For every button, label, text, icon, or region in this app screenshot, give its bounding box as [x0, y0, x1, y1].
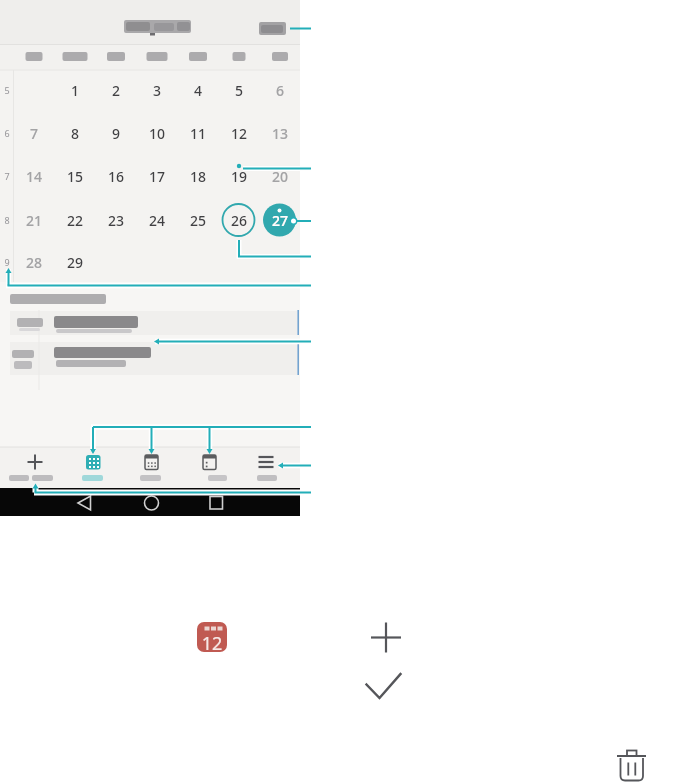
- staticText: 12: [198, 631, 226, 653]
- staticText: 14: [20, 167, 48, 185]
- button[interactable]: [134, 447, 168, 487]
- staticText: 4: [184, 81, 212, 99]
- staticText: 22: [61, 211, 89, 229]
- staticText: 3: [143, 81, 171, 99]
- button[interactable]: [76, 447, 110, 487]
- staticText: 28: [20, 253, 48, 271]
- staticText: 27: [266, 211, 294, 229]
- staticText: 7: [1, 170, 13, 182]
- staticText: 21: [20, 211, 48, 229]
- staticText: 12: [225, 124, 253, 142]
- staticText: 17: [143, 167, 171, 185]
- button[interactable]: [249, 447, 283, 487]
- button[interactable]: [197, 622, 227, 652]
- staticText: 8: [1, 214, 13, 226]
- staticText: 8: [61, 124, 89, 142]
- button[interactable]: [138, 490, 166, 514]
- staticText: 5: [1, 84, 13, 96]
- staticText: 13: [266, 124, 294, 142]
- button[interactable]: [70, 490, 98, 514]
- staticText: 18: [184, 167, 212, 185]
- staticText: 9: [1, 256, 13, 268]
- staticText: 26: [225, 211, 253, 229]
- button[interactable]: [18, 447, 52, 487]
- staticText: 23: [102, 211, 130, 229]
- staticText: 15: [61, 167, 89, 185]
- staticText: 6: [1, 127, 13, 139]
- staticText: 24: [143, 211, 171, 229]
- button[interactable]: [613, 748, 649, 783]
- staticText: 2: [102, 81, 130, 99]
- staticText: 1: [61, 81, 89, 99]
- staticText: 6: [266, 81, 294, 99]
- staticText: 27: [266, 211, 294, 229]
- staticText: 9: [102, 124, 130, 142]
- staticText: 29: [61, 253, 89, 271]
- button[interactable]: [255, 18, 291, 38]
- staticText: 25: [184, 211, 212, 229]
- staticText: 7: [20, 124, 48, 142]
- staticText: 16: [102, 167, 130, 185]
- staticText: 20: [266, 167, 294, 185]
- button[interactable]: [369, 621, 403, 655]
- staticText: 5: [225, 81, 253, 99]
- button[interactable]: [364, 671, 404, 701]
- staticText: 11: [184, 124, 212, 142]
- button[interactable]: [10, 342, 297, 375]
- staticText: 10: [143, 124, 171, 142]
- button[interactable]: [192, 447, 226, 487]
- staticText: 19: [225, 167, 253, 185]
- button[interactable]: [202, 490, 230, 514]
- button[interactable]: [10, 311, 297, 335]
